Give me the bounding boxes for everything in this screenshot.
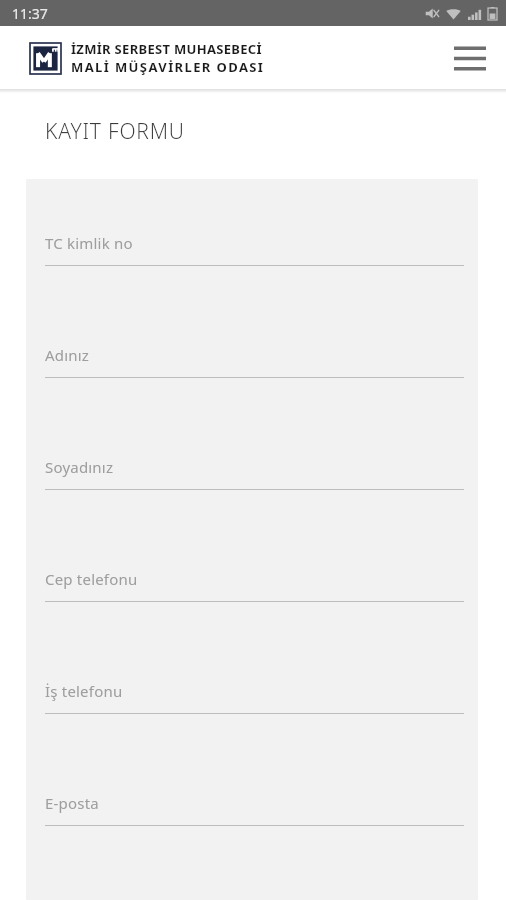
staticText: Adınız bbox=[45, 345, 90, 365]
button[interactable]: İş telefonu bbox=[26, 673, 478, 785]
button[interactable]: Cep telefonu bbox=[26, 561, 478, 673]
button[interactable]: TC kimlik no bbox=[26, 225, 478, 337]
staticText: İş telefonu bbox=[45, 681, 123, 701]
staticText: KAYIT FORMU bbox=[45, 117, 185, 146]
staticText: Soyadınız bbox=[45, 457, 114, 477]
staticText: 11:37 bbox=[12, 4, 48, 23]
button[interactable]: E-posta bbox=[26, 785, 478, 897]
staticText: İZMİR SERBEST MUHASEBECİ bbox=[71, 40, 262, 58]
button[interactable]: Adınız bbox=[26, 337, 478, 449]
staticText: E-posta bbox=[45, 793, 99, 813]
staticText: Cep telefonu bbox=[45, 569, 138, 589]
staticText: TC kimlik no bbox=[45, 233, 133, 253]
button[interactable]: Menu bbox=[446, 34, 494, 82]
staticText: MALİ MÜŞAVİRLER ODASI bbox=[71, 58, 265, 76]
button[interactable]: Soyadınız bbox=[26, 449, 478, 561]
